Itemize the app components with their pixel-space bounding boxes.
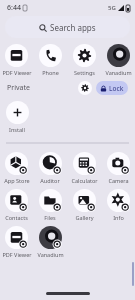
staticText: Vanadium (105, 69, 132, 76)
staticText: PDF Viewer (2, 251, 32, 258)
staticText: Info (113, 214, 124, 221)
button[interactable]: PDF Viewer (0, 225, 33, 259)
staticText: Camera (108, 177, 129, 184)
button[interactable]: Vanadium (33, 225, 67, 259)
button[interactable]: Files (33, 188, 67, 222)
staticText: Private (7, 83, 30, 93)
staticText: Phone (42, 69, 59, 76)
button[interactable]: Private space settings (78, 81, 92, 95)
staticText: PDF Viewer (2, 69, 32, 76)
staticText: Settings (74, 69, 95, 76)
button[interactable]: Lock (96, 81, 128, 95)
button[interactable]: Vanadium (101, 43, 135, 77)
staticText: Install (9, 126, 25, 133)
staticText: Contacts (5, 214, 28, 221)
staticText: Auditor (40, 177, 60, 184)
staticText: Vanadium (37, 251, 64, 258)
staticText: 5G (108, 4, 116, 12)
button[interactable]: Calculator (67, 151, 101, 185)
button[interactable]: Gallery (67, 188, 101, 222)
staticText: Calculator (71, 177, 98, 184)
staticText: Search apps (50, 22, 96, 33)
staticText: App Store (4, 177, 30, 184)
staticText: Lock (109, 84, 124, 93)
button[interactable]: Phone (33, 43, 67, 77)
button[interactable]: PDF Viewer (0, 43, 33, 77)
staticText: 6:44 (7, 3, 21, 13)
button[interactable]: Search apps (5, 16, 130, 38)
button[interactable]: Info (101, 188, 135, 222)
button[interactable]: Settings (67, 43, 101, 77)
button[interactable]: Auditor (33, 151, 67, 185)
button[interactable]: App Store (0, 151, 33, 185)
button[interactable]: Install (0, 100, 34, 134)
button[interactable]: Camera (101, 151, 135, 185)
staticText: Files (44, 214, 56, 221)
staticText: Gallery (75, 214, 94, 221)
button[interactable]: Contacts (0, 188, 33, 222)
